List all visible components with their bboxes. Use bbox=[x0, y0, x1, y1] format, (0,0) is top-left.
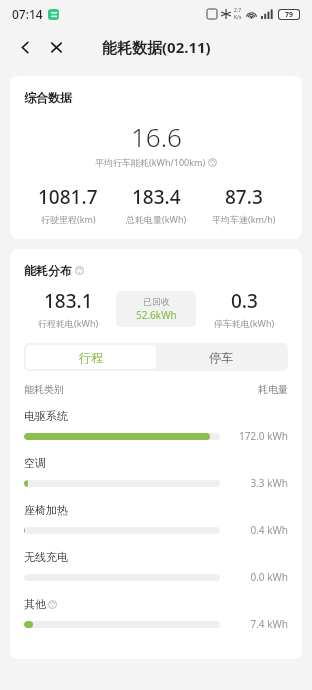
button[interactable]: 停车 bbox=[156, 345, 286, 369]
staticText: 0.0 kWh bbox=[230, 570, 288, 584]
staticText: 1081.7 bbox=[38, 184, 98, 210]
staticText: 座椅加热 bbox=[24, 503, 68, 517]
staticText: 已回收 bbox=[143, 296, 170, 307]
staticText: 停车耗电(kWh) bbox=[214, 317, 275, 329]
staticText: 行程 bbox=[79, 350, 103, 365]
staticText: 2.7 bbox=[234, 7, 242, 14]
staticText: 183.4 bbox=[132, 184, 181, 210]
staticText: 07:14 bbox=[12, 6, 43, 22]
staticText: 79 bbox=[285, 10, 294, 19]
staticText: 无线充电 bbox=[24, 550, 68, 564]
staticText: 16.6 bbox=[131, 119, 182, 154]
staticText: K/s bbox=[234, 14, 242, 21]
staticText: 能耗数据(02.11) bbox=[102, 37, 211, 57]
staticText: 行驶里程(km) bbox=[41, 213, 96, 225]
button[interactable]: Close bbox=[43, 34, 69, 60]
staticText: 能耗类别 bbox=[24, 383, 64, 396]
staticText: 其他 bbox=[24, 597, 46, 611]
button[interactable]: Back bbox=[12, 34, 38, 60]
staticText: 172.0 kWh bbox=[230, 429, 288, 443]
staticText: 空调 bbox=[24, 456, 46, 470]
staticText: 行程耗电(kWh) bbox=[38, 317, 99, 329]
staticText: 平均行车能耗(kWh/100km) bbox=[95, 156, 206, 168]
staticText: 183.1 bbox=[44, 288, 93, 314]
staticText: 总耗电量(kWh) bbox=[126, 213, 187, 225]
staticText: 平均车速(km/h) bbox=[212, 213, 276, 225]
staticText: 综合数据 bbox=[24, 90, 72, 105]
staticText: 7.4 kWh bbox=[230, 617, 288, 631]
staticText: 电驱系统 bbox=[24, 409, 68, 423]
staticText: 耗电量 bbox=[258, 383, 288, 396]
staticText: 0.4 kWh bbox=[230, 523, 288, 537]
staticText: 停车 bbox=[209, 350, 233, 365]
staticText: 87.3 bbox=[225, 184, 263, 210]
staticText: 能耗分布 bbox=[24, 263, 72, 278]
staticText: 0.3 bbox=[231, 288, 258, 314]
staticText: 52.6kWh bbox=[136, 308, 177, 322]
button[interactable]: 行程 bbox=[26, 345, 156, 369]
staticText: 3.3 kWh bbox=[230, 476, 288, 490]
